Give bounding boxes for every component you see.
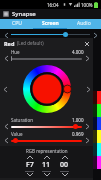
staticText: 100% <box>81 2 93 8</box>
staticText: Backlight <box>8 98 28 104</box>
button[interactable]: Tuning <box>0 84 101 95</box>
staticText: 4.000 <box>72 49 84 55</box>
other: App icon <box>3 11 9 17</box>
button[interactable]: Contrast <box>0 73 101 84</box>
button[interactable]: Screen <box>33 19 67 28</box>
staticText: 16:04 <box>47 2 59 8</box>
button[interactable]: Decrease <box>3 137 9 143</box>
staticText: 00 <box>60 160 69 170</box>
staticText: (Led default) <box>17 40 44 46</box>
button[interactable]: Value <box>0 130 93 144</box>
button[interactable]: Increase <box>84 123 90 129</box>
staticText: Backlight <box>8 153 28 159</box>
button[interactable]: Increase <box>84 55 90 61</box>
button[interactable]: Hex channel F7 <box>25 156 34 176</box>
button[interactable]: Tuning <box>0 139 101 150</box>
button[interactable]: App icon <box>0 9 101 19</box>
button[interactable]: Colour wheel <box>23 65 71 113</box>
staticText: Audio <box>77 20 91 27</box>
staticText: Hue <box>11 49 20 55</box>
button[interactable]: Close <box>83 40 90 47</box>
button[interactable] <box>79 156 101 169</box>
staticText: CPU <box>12 20 22 27</box>
staticText: 0.969 <box>72 131 84 137</box>
staticText: Synapse <box>12 10 36 18</box>
button[interactable]: Gamma <box>0 106 101 117</box>
button[interactable]: Decrease <box>2 86 8 92</box>
staticText: 11 <box>42 160 51 170</box>
button[interactable] <box>79 117 101 130</box>
staticText: Backlight <box>8 43 28 49</box>
button[interactable]: Backlight <box>0 95 101 106</box>
button[interactable]: Decrease <box>3 32 9 38</box>
staticText: Tuning <box>8 142 23 148</box>
staticText: Screen <box>42 20 59 27</box>
button[interactable]: Audio <box>67 19 101 28</box>
button[interactable] <box>79 143 101 156</box>
button[interactable]: Decrease <box>3 123 9 129</box>
button[interactable]: Contrast <box>0 128 101 139</box>
button[interactable]: CPU <box>0 19 33 28</box>
staticText: Red <box>4 40 15 47</box>
staticText: RGB representation <box>26 148 68 154</box>
button[interactable]: Red <box>0 38 93 48</box>
button[interactable]: Saturation <box>0 116 93 130</box>
button[interactable]: Gamma <box>0 51 101 62</box>
button[interactable] <box>79 130 101 143</box>
staticText: Gamma <box>8 54 25 60</box>
button[interactable]: Color <box>0 62 101 73</box>
button[interactable]: Hex channel 00 <box>60 156 69 176</box>
button[interactable]: Increase <box>85 86 91 92</box>
button[interactable]: Backlight <box>0 150 101 161</box>
button[interactable]: Color <box>0 117 101 128</box>
staticText: Color <box>8 120 20 126</box>
button[interactable]: Backlight <box>0 40 101 51</box>
staticText: F7 <box>26 160 34 170</box>
staticText: Value <box>11 131 23 137</box>
button[interactable] <box>79 91 101 104</box>
staticText: Contrast <box>8 131 27 137</box>
button[interactable]: Increase <box>92 32 98 38</box>
staticText: Saturation <box>11 117 33 123</box>
button[interactable]: Increase <box>84 137 90 143</box>
button[interactable]: Gamma <box>0 161 101 172</box>
button[interactable] <box>79 104 101 117</box>
button[interactable]: Hex channel 11 <box>42 156 51 176</box>
button[interactable]: Hue <box>0 48 93 62</box>
button[interactable]: Decrease <box>0 29 101 40</box>
staticText: Contrast <box>8 76 27 82</box>
staticText: 1.000 <box>72 117 84 123</box>
button[interactable]: Color <box>0 172 101 180</box>
button[interactable]: Decrease <box>3 55 9 61</box>
